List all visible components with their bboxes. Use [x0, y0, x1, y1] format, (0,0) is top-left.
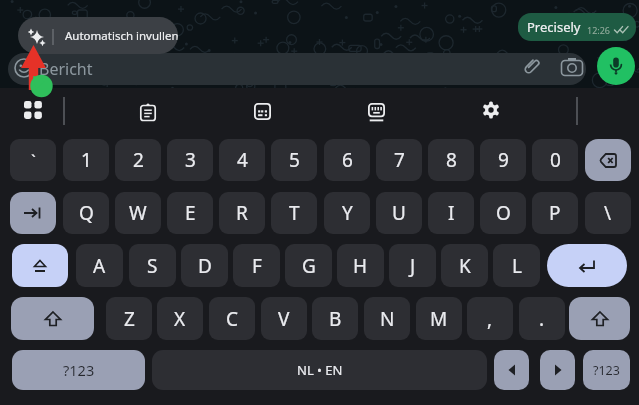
button[interactable]: G: [285, 244, 332, 287]
button[interactable]: Q: [63, 192, 109, 234]
staticText: B: [329, 306, 342, 332]
staticText: N: [380, 306, 395, 332]
button[interactable]: 0: [532, 139, 578, 181]
button[interactable]: [12, 244, 68, 287]
button[interactable]: [547, 244, 627, 287]
staticText: ?123: [63, 360, 95, 380]
button[interactable]: 5: [271, 139, 317, 181]
button[interactable]: D: [181, 244, 228, 287]
button[interactable]: [471, 90, 511, 130]
button[interactable]: P: [532, 192, 578, 234]
button[interactable]: Z: [106, 297, 152, 340]
button[interactable]: 6: [324, 139, 370, 181]
button[interactable]: ,: [467, 297, 513, 340]
staticText: 1: [81, 147, 92, 173]
staticText: A: [93, 253, 106, 279]
staticText: X: [174, 306, 186, 332]
staticText: U: [392, 200, 406, 226]
staticText: M: [430, 306, 448, 332]
staticText: 12:26: [587, 24, 611, 36]
staticText: E: [185, 200, 196, 226]
button[interactable]: Y: [324, 192, 370, 234]
button[interactable]: [128, 92, 168, 132]
staticText: 4: [237, 147, 248, 173]
staticText: C: [226, 306, 239, 332]
button[interactable]: \: [585, 192, 631, 234]
button[interactable]: Bericht: [8, 53, 586, 85]
staticText: Q: [79, 200, 94, 226]
staticText: L: [512, 253, 522, 279]
button[interactable]: V: [261, 297, 307, 340]
staticText: T: [289, 200, 300, 226]
staticText: Automatisch invullen: [65, 28, 178, 44]
button[interactable]: T: [271, 192, 317, 234]
button[interactable]: Precisely: [518, 13, 636, 41]
staticText: I: [448, 200, 455, 226]
button[interactable]: C: [209, 297, 255, 340]
button[interactable]: L: [493, 244, 540, 287]
button[interactable]: [585, 139, 631, 181]
staticText: 2: [133, 147, 144, 173]
staticText: Bericht: [39, 58, 93, 80]
button[interactable]: 3: [167, 139, 213, 181]
staticText: S: [147, 253, 158, 279]
button[interactable]: ?123: [12, 350, 145, 390]
staticText: ,: [487, 306, 493, 332]
button[interactable]: Automatisch invullen: [18, 17, 178, 54]
button[interactable]: [10, 192, 56, 234]
button[interactable]: K: [441, 244, 488, 287]
button[interactable]: 4: [219, 139, 265, 181]
button[interactable]: H: [337, 244, 384, 287]
button[interactable]: 8: [428, 139, 474, 181]
button[interactable]: 9: [480, 139, 526, 181]
button[interactable]: [494, 350, 529, 390]
staticText: \: [604, 200, 612, 226]
button[interactable]: X: [157, 297, 203, 340]
button[interactable]: U: [376, 192, 422, 234]
button[interactable]: R: [219, 192, 265, 234]
staticText: .: [539, 306, 545, 332]
button[interactable]: B: [312, 297, 358, 340]
staticText: Z: [124, 306, 135, 332]
button[interactable]: 1: [63, 139, 109, 181]
staticText: Y: [342, 200, 353, 226]
button[interactable]: I: [428, 192, 474, 234]
staticText: NL • EN: [297, 361, 343, 379]
button[interactable]: [13, 90, 53, 130]
button[interactable]: 2: [115, 139, 161, 181]
button[interactable]: [242, 91, 282, 131]
staticText: V: [278, 306, 290, 332]
button[interactable]: M: [416, 297, 462, 340]
button[interactable]: N: [364, 297, 410, 340]
button[interactable]: F: [233, 244, 280, 287]
button[interactable]: W: [115, 192, 161, 234]
button[interactable]: [540, 350, 575, 390]
staticText: F: [252, 253, 262, 279]
button[interactable]: NL • EN: [152, 350, 487, 390]
staticText: ?123: [593, 362, 620, 379]
button[interactable]: O: [480, 192, 526, 234]
button[interactable]: A: [76, 244, 123, 287]
staticText: D: [198, 253, 212, 279]
staticText: 7: [394, 147, 405, 173]
button[interactable]: [11, 297, 94, 340]
staticText: 0: [550, 147, 561, 173]
button[interactable]: `: [10, 139, 56, 181]
button[interactable]: [597, 47, 635, 85]
button[interactable]: 7: [376, 139, 422, 181]
button[interactable]: J: [389, 244, 436, 287]
staticText: K: [459, 253, 471, 279]
button[interactable]: E: [167, 192, 213, 234]
staticText: 9: [498, 147, 509, 173]
staticText: P: [549, 200, 561, 226]
staticText: Precisely: [527, 18, 581, 36]
staticText: 3: [185, 147, 196, 173]
button[interactable]: ?123: [583, 350, 630, 390]
button[interactable]: [569, 297, 630, 340]
button[interactable]: [356, 92, 396, 132]
staticText: R: [236, 200, 248, 226]
button[interactable]: .: [519, 297, 565, 340]
staticText: H: [353, 253, 368, 279]
staticText: 5: [289, 147, 300, 173]
button[interactable]: S: [129, 244, 176, 287]
